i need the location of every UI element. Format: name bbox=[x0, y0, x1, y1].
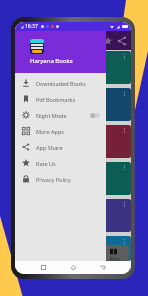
button[interactable]: Rate Us bbox=[15, 155, 106, 171]
button[interactable]: Downloaded Books bbox=[15, 75, 106, 91]
button[interactable] bbox=[15, 51, 131, 84]
button[interactable]: App Share bbox=[15, 139, 106, 155]
button[interactable]: Pdf Bookmarks bbox=[15, 91, 106, 107]
button[interactable] bbox=[15, 88, 131, 121]
button[interactable]: Recents bbox=[40, 264, 47, 271]
staticText: 16:37 bbox=[25, 23, 38, 30]
button[interactable] bbox=[15, 125, 131, 158]
button[interactable]: Free Book bbox=[15, 245, 129, 261]
button[interactable]: Back bbox=[99, 264, 106, 271]
staticText: Night Mode bbox=[36, 112, 67, 119]
button[interactable]: Privacy Policy bbox=[15, 171, 106, 187]
staticText: Rate Us bbox=[36, 160, 56, 167]
button[interactable]: Home bbox=[70, 264, 77, 271]
button[interactable]: Favorites bbox=[103, 36, 113, 46]
staticText: Free Book bbox=[110, 256, 129, 261]
button[interactable] bbox=[15, 199, 131, 232]
staticText: Haryana Books bbox=[30, 57, 73, 65]
button[interactable]: Share bbox=[117, 36, 127, 46]
button[interactable] bbox=[15, 236, 131, 261]
staticText: Downloaded Books bbox=[36, 80, 86, 87]
staticText: Pdf Bookmarks bbox=[36, 96, 76, 103]
staticText: More Apps bbox=[36, 128, 64, 135]
button[interactable]: More Apps bbox=[15, 123, 106, 139]
button[interactable]: Night Mode bbox=[15, 107, 106, 123]
button[interactable] bbox=[15, 162, 131, 195]
staticText: App Share bbox=[36, 144, 63, 151]
staticText: Privacy Policy bbox=[36, 176, 71, 183]
